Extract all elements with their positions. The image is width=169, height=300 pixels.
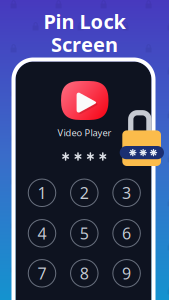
staticText: 9 <box>122 263 131 284</box>
button[interactable]: 4 <box>28 220 56 247</box>
staticText: 7 <box>37 263 46 284</box>
button[interactable]: 6 <box>113 220 140 247</box>
button[interactable]: 7 <box>28 260 56 287</box>
staticText: 5 <box>80 223 89 244</box>
button[interactable]: 8 <box>70 260 98 287</box>
staticText: 8 <box>80 263 89 284</box>
button[interactable]: 3 <box>113 179 140 207</box>
staticText: 4 <box>37 223 46 244</box>
staticText: Video Player <box>57 126 111 139</box>
staticText: 3 <box>122 182 131 203</box>
button[interactable]: 1 <box>28 179 56 207</box>
staticText: 6 <box>122 223 131 244</box>
staticText: 2 <box>80 182 89 203</box>
staticText: Pin Lock <box>43 8 125 35</box>
button[interactable]: 9 <box>113 260 140 287</box>
button[interactable]: 2 <box>70 179 98 207</box>
staticText: 1 <box>37 182 46 203</box>
staticText: Screen <box>51 31 118 58</box>
button[interactable]: 5 <box>70 220 98 247</box>
